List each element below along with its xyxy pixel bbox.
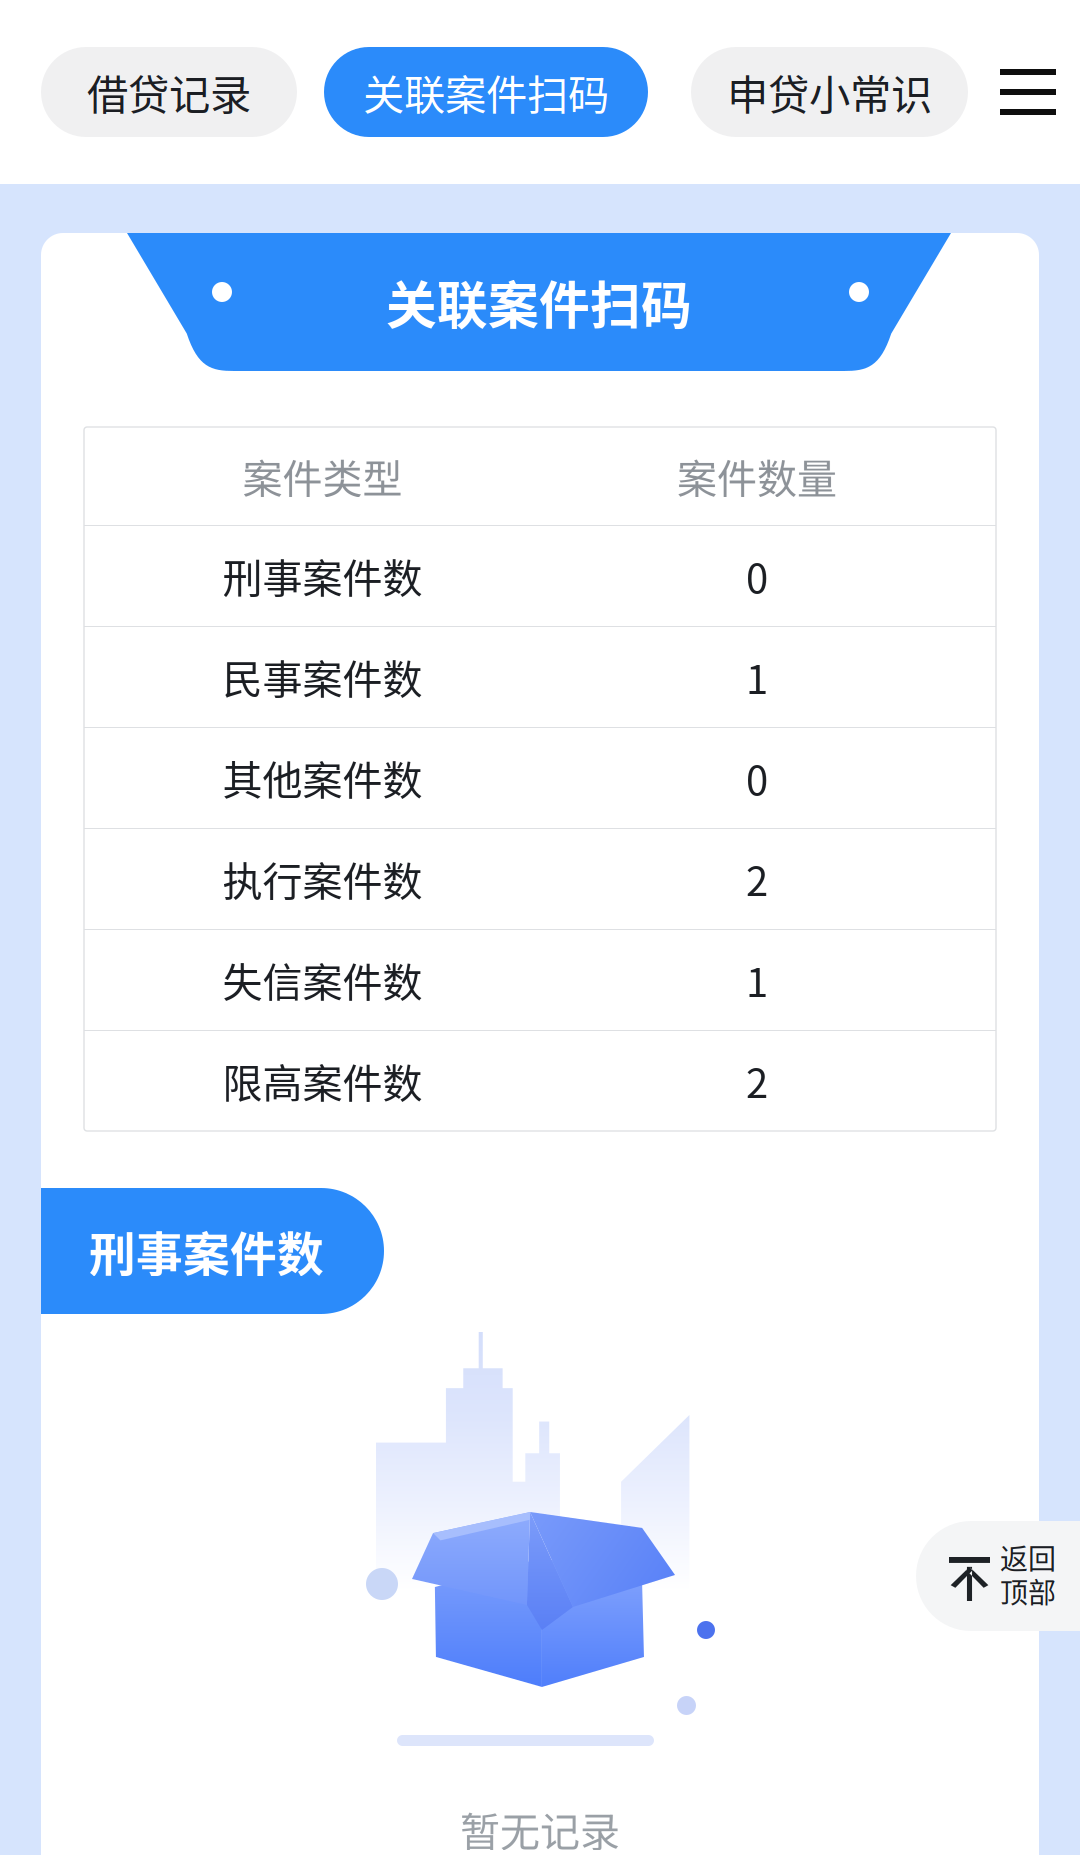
staticText: 失信案件数 — [222, 950, 422, 1008]
staticText: 0 — [746, 748, 768, 806]
staticText: 刑事案件数 — [222, 546, 422, 604]
staticText: 顶部 — [1000, 1571, 1056, 1611]
button[interactable]: 申贷小常识 — [691, 47, 968, 137]
staticText: 1 — [746, 950, 768, 1008]
button[interactable]: 刑事案件数 — [0, 1188, 384, 1314]
staticText: 刑事案件数 — [89, 1217, 324, 1285]
staticText: 2 — [746, 849, 768, 907]
staticText: 返回 — [1000, 1537, 1056, 1577]
staticText: 执行案件数 — [222, 849, 422, 907]
staticText: 其他案件数 — [222, 748, 422, 806]
staticText: 民事案件数 — [222, 647, 422, 705]
button[interactable]: 借贷记录 — [41, 47, 297, 137]
staticText: 申贷小常识 — [727, 62, 932, 122]
staticText: 1 — [746, 647, 768, 705]
staticText: 暂无记录 — [460, 1800, 620, 1855]
staticText: 案件类型 — [242, 447, 402, 505]
button[interactable]: 关联案件扫码 — [324, 47, 648, 137]
staticText: 案件数量 — [677, 447, 837, 505]
staticText: 关联案件扫码 — [386, 265, 692, 339]
staticText: 限高案件数 — [222, 1051, 422, 1109]
button[interactable]: 返回顶部 — [916, 1521, 1080, 1631]
staticText: 0 — [746, 546, 768, 604]
staticText: 关联案件扫码 — [363, 62, 609, 122]
staticText: 2 — [746, 1051, 768, 1109]
button[interactable]: 菜单 — [988, 46, 1068, 138]
staticText: 借贷记录 — [87, 62, 251, 122]
